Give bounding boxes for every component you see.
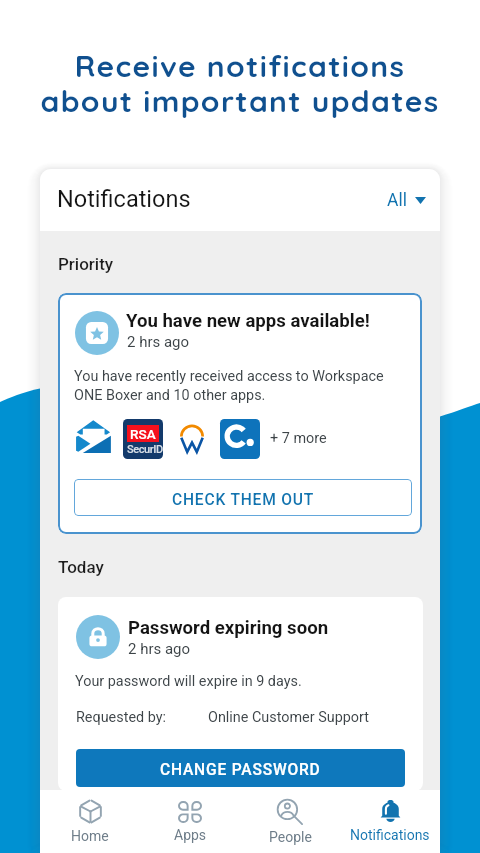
button[interactable]: CHECK THEM OUT xyxy=(74,479,412,516)
staticText: 2 hrs ago xyxy=(128,640,191,658)
staticText: You have recently received access to Wor… xyxy=(74,368,384,404)
button[interactable]: People xyxy=(240,790,340,853)
staticText: SecurID xyxy=(127,443,163,456)
staticText: All xyxy=(387,190,407,211)
staticText: + 7 more xyxy=(270,430,327,447)
staticText: Priority xyxy=(58,254,114,274)
button[interactable]: All xyxy=(373,180,440,221)
staticText: Home xyxy=(71,828,109,844)
staticText: Your password will expire in 9 days. xyxy=(75,673,302,690)
staticText: 2 hrs ago xyxy=(127,333,190,351)
staticText: Today xyxy=(58,557,104,577)
staticText: Apps xyxy=(174,827,207,843)
button[interactable]: You have new apps available! xyxy=(58,293,422,534)
staticText: RSA xyxy=(130,426,156,442)
button[interactable]: Home xyxy=(40,790,140,853)
staticText: Notifications xyxy=(350,827,430,843)
staticText: CHECK THEM OUT xyxy=(172,491,315,509)
staticText: Notifications xyxy=(57,185,191,213)
button[interactable]: Apps xyxy=(140,790,240,853)
staticText: You have new apps available! xyxy=(126,310,370,332)
staticText: CHANGE PASSWORD xyxy=(160,761,321,779)
staticText: Password expiring soon xyxy=(128,617,329,639)
staticText: Receive notifications about important up… xyxy=(0,47,480,120)
button[interactable]: Password expiring soon xyxy=(58,597,423,791)
button[interactable]: CHANGE PASSWORD xyxy=(76,749,405,787)
button[interactable]: Notifications xyxy=(340,790,440,853)
staticText: Requested by: xyxy=(76,709,166,726)
staticText: People xyxy=(269,829,312,845)
staticText: Online Customer Support xyxy=(208,709,369,726)
